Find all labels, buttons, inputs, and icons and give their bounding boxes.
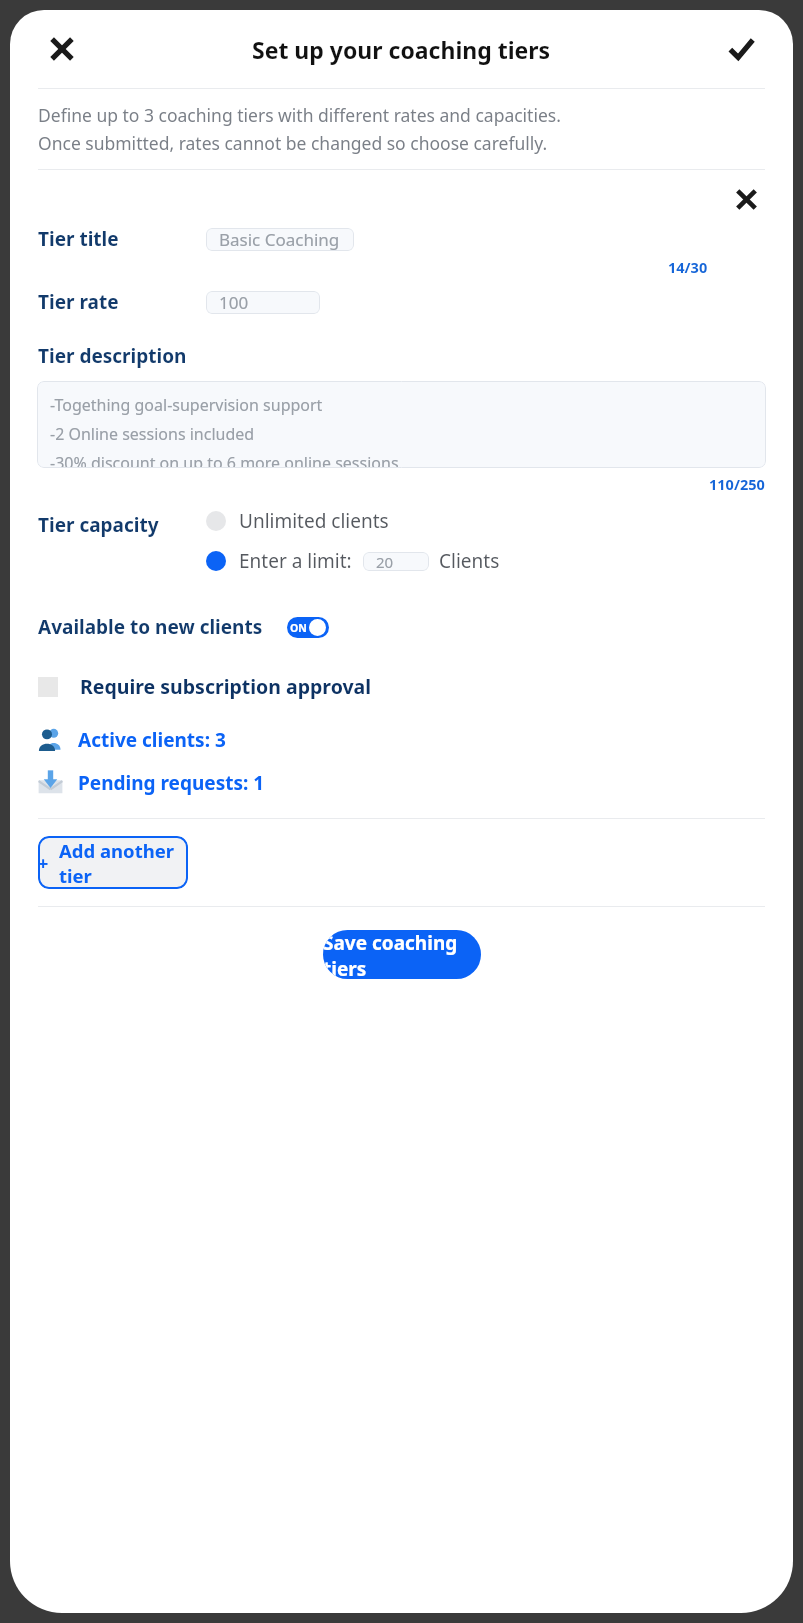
button[interactable]: Close xyxy=(40,27,84,71)
button[interactable]: 20 xyxy=(363,552,429,571)
staticText: Pending requests: 1 xyxy=(78,770,265,796)
button[interactable]: Save coaching tiers xyxy=(323,930,481,979)
staticText: 110/250 xyxy=(709,474,765,494)
staticText: -30% discount on up to 6 more online ses… xyxy=(50,452,399,468)
button[interactable]: Basic Coaching xyxy=(206,228,354,251)
staticText: Set up your coaching tiers xyxy=(252,34,551,65)
staticText: Available to new clients xyxy=(38,614,263,640)
staticText: Tier capacity xyxy=(38,512,180,538)
staticText: Require subscription approval xyxy=(80,673,372,700)
button[interactable]: Pending requests: 1 xyxy=(10,766,793,799)
staticText: Add another tier xyxy=(59,838,188,888)
button[interactable]: Confirm xyxy=(719,27,763,71)
staticText: Active clients: 3 xyxy=(78,727,226,753)
staticText: + xyxy=(38,851,49,876)
staticText: Clients xyxy=(439,548,500,574)
staticText: Tier description xyxy=(38,343,187,369)
staticText: -2 Online sessions included xyxy=(50,423,255,445)
staticText: 100 xyxy=(219,291,249,314)
button[interactable]: -Togething goal-supervision support xyxy=(37,381,766,468)
button[interactable]: + xyxy=(38,836,188,889)
button[interactable]: Remove tier xyxy=(725,178,767,220)
staticText: Tier title xyxy=(38,226,178,252)
staticText: Once submitted, rates cannot be changed … xyxy=(38,131,548,155)
button[interactable]: Require subscription approval xyxy=(10,669,793,704)
button[interactable]: Enter a limit: xyxy=(206,548,352,574)
button[interactable]: Active clients: 3 xyxy=(10,723,793,756)
staticText: -Togething goal-supervision support xyxy=(50,394,323,416)
staticText: Define up to 3 coaching tiers with diffe… xyxy=(38,103,561,127)
staticText: Basic Coaching xyxy=(219,228,340,251)
staticText: 20 xyxy=(376,552,394,571)
button[interactable]: Available to new clients, on xyxy=(287,617,329,638)
staticText: Save coaching tiers xyxy=(323,930,481,979)
button[interactable]: 100 xyxy=(206,291,320,314)
staticText: ON xyxy=(290,621,307,635)
staticText: Enter a limit: xyxy=(239,548,352,574)
staticText: Tier rate xyxy=(38,289,178,315)
staticText: Unlimited clients xyxy=(239,508,389,534)
button[interactable]: Unlimited clients xyxy=(206,508,389,534)
staticText: 14/30 xyxy=(668,257,708,277)
